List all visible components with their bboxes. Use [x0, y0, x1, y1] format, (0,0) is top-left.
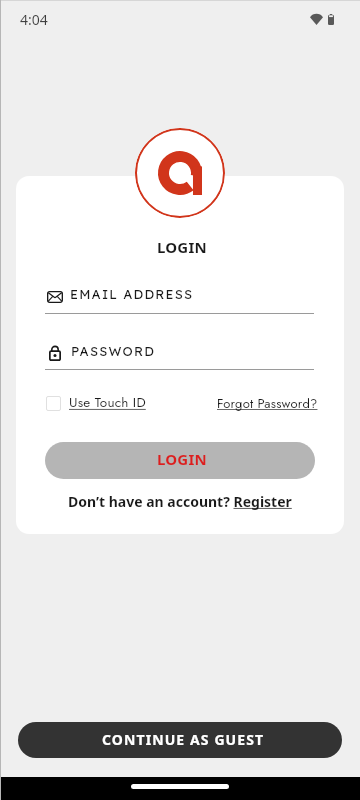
staticText: Use Touch ID: [69, 393, 146, 413]
button[interactable]: CONTINUE AS GUEST: [18, 722, 342, 758]
other: Wi-Fi: [310, 14, 323, 25]
button[interactable]: Forgot Password?: [217, 394, 318, 413]
button[interactable]: Don’t have an account? Register: [68, 492, 292, 511]
staticText: CONTINUE AS GUEST: [102, 730, 265, 749]
staticText: LOGIN: [157, 237, 207, 257]
staticText: LOGIN: [157, 449, 207, 469]
staticText: EMAIL ADDRESS: [70, 286, 194, 302]
staticText: PASSWORD: [71, 343, 156, 359]
button[interactable]: Use Touch ID: [46, 393, 146, 413]
button[interactable]: LOGIN: [45, 442, 315, 479]
other: Battery: [328, 14, 334, 25]
staticText: 4:04: [20, 10, 48, 29]
other: App logo: [135, 128, 225, 218]
